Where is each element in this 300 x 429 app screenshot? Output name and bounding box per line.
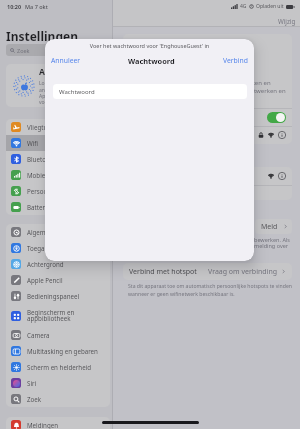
button[interactable]: Siri xyxy=(6,375,110,391)
staticText: Bluetooth xyxy=(27,155,56,163)
staticText: Zoek xyxy=(27,395,42,403)
staticText: Persoonlijke hotspot xyxy=(27,187,87,195)
staticText: Verbind xyxy=(223,56,248,65)
other: Wifi-sterkte xyxy=(268,173,274,179)
button[interactable]: Multitasking en gebaren xyxy=(6,343,110,359)
button[interactable]: Wifi xyxy=(6,135,110,151)
staticText: Meldingen xyxy=(27,421,59,429)
staticText: Wachtwoord xyxy=(128,56,175,66)
button[interactable]: Scherm en helderheid xyxy=(6,359,110,375)
staticText: Log ande App voor xyxy=(39,80,51,105)
staticText: 10:20 xyxy=(7,3,22,10)
staticText: Sta dit apparaat toe om automatisch pers… xyxy=(128,283,292,297)
staticText: Ma 7 okt xyxy=(25,3,48,10)
button[interactable]: Mobiel netwerk xyxy=(6,167,110,183)
other: Info xyxy=(278,172,286,180)
other: Wifi-sterkte xyxy=(268,132,274,138)
staticText: 4G xyxy=(240,3,247,10)
staticText: Vliegtuigmodus xyxy=(27,123,73,131)
staticText: Scherm en helderheid xyxy=(27,363,92,371)
button[interactable]: Vliegtuigmodus xyxy=(6,119,110,135)
staticText: Achtergrond xyxy=(27,260,64,268)
staticText: Wachtwoord xyxy=(59,88,95,96)
staticText: Instellingen xyxy=(6,28,78,44)
staticText: Wifi xyxy=(27,139,39,147)
staticText: Siri xyxy=(27,379,37,387)
button[interactable]: Verbind xyxy=(221,54,250,67)
staticText: Log in om iCloud, de App Store en andere… xyxy=(128,63,286,95)
other: Info xyxy=(278,131,286,139)
staticText: Opladen uit xyxy=(256,3,284,10)
staticText: Wijzig xyxy=(278,17,296,25)
button[interactable]: Beginscherm en appbibliotheek xyxy=(6,304,110,327)
button[interactable]: Apple Pencil xyxy=(6,272,110,288)
button[interactable]: Bluetooth xyxy=(6,151,110,167)
staticText: Mobiel netwerk xyxy=(27,171,73,179)
button[interactable]: Annuleer xyxy=(49,54,83,67)
staticText: Camera xyxy=(27,331,50,339)
staticText: Meld xyxy=(261,222,278,232)
button[interactable]: Bedieningspaneel xyxy=(6,288,110,304)
button[interactable]: Algemeen xyxy=(6,224,110,240)
staticText: Toegankelijkheid xyxy=(27,244,76,252)
staticText: Apple Pencil xyxy=(27,276,63,284)
button[interactable]: Wachtwoord xyxy=(53,84,247,99)
staticText: bewerken. Als melding over xyxy=(254,236,290,250)
button[interactable]: EnghouseGuest xyxy=(123,126,292,144)
staticText: Zoek xyxy=(17,47,30,54)
staticText: Verbind met hotspot xyxy=(129,267,197,277)
button[interactable]: Persoonlijke hotspot xyxy=(6,183,110,199)
staticText: Algemeen xyxy=(27,228,57,236)
staticText: Multitasking en gebaren xyxy=(27,347,98,355)
staticText: Bedieningspaneel xyxy=(27,292,80,300)
button[interactable]: Wifi xyxy=(123,109,292,126)
staticText: Batterij xyxy=(27,203,49,211)
button[interactable]: Wijzig xyxy=(276,15,298,27)
button[interactable]: Netwerk xyxy=(123,167,292,185)
button[interactable]: Achtergrond xyxy=(6,256,110,272)
button[interactable]: Verbind met hotspot xyxy=(123,263,292,280)
button[interactable] xyxy=(123,186,292,200)
button[interactable]: Toegankelijkheid xyxy=(6,240,110,256)
button[interactable]: Batterij xyxy=(6,199,110,215)
other: Beveiligd xyxy=(258,132,264,138)
button[interactable]: Wifi aan/uit xyxy=(267,112,286,123)
button[interactable]: Zoek xyxy=(6,44,110,56)
button[interactable]: Zoek xyxy=(6,391,110,407)
button[interactable]: Camera xyxy=(6,327,110,343)
staticText: Beginscherm en appbibliotheek xyxy=(27,308,75,323)
staticText: Voer het wachtwoord voor 'EnghouseGuest'… xyxy=(45,42,254,49)
staticText: Ap xyxy=(39,66,51,78)
button[interactable]: Meldingen xyxy=(6,417,110,429)
staticText: Vraag om verbinding xyxy=(208,267,278,277)
button[interactable]: Ap xyxy=(6,64,110,107)
staticText: Annuleer xyxy=(51,56,81,65)
button[interactable]: Meld xyxy=(255,219,292,234)
